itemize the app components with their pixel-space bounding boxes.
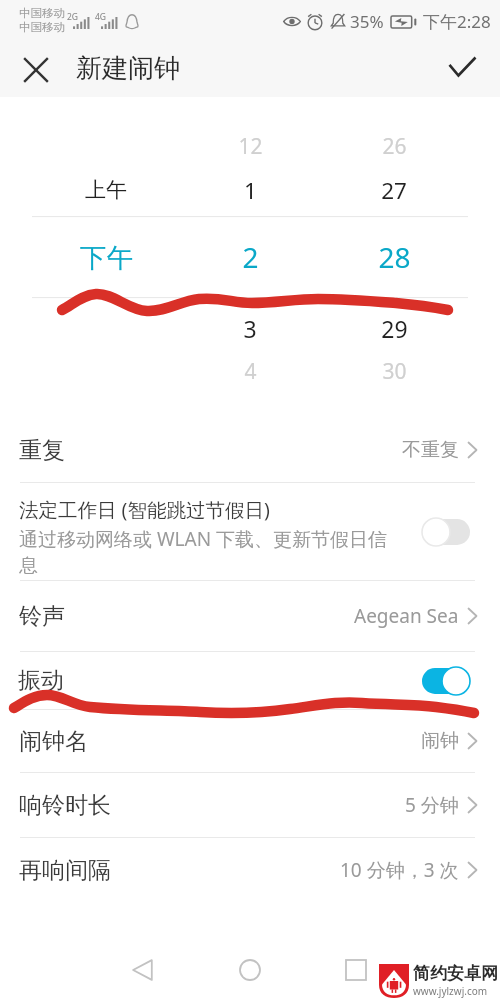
button[interactable]: 铃声 (0, 581, 500, 651)
button[interactable]: Close (14, 48, 58, 92)
staticText: 法定工作日 (智能跳过节假日) (19, 496, 270, 523)
staticText: 中国移动 (19, 20, 65, 34)
staticText: 10 分钟，3 次 (340, 857, 459, 883)
button[interactable]: 上午 (0, 97, 500, 418)
staticText: 下午2:28 (423, 10, 491, 33)
staticText: 铃声 (19, 602, 65, 631)
staticText: 3 (243, 313, 257, 344)
staticText: 新建闹钟 (76, 52, 180, 85)
staticText: 4 (244, 357, 257, 386)
staticText: 中国移动 (19, 6, 65, 20)
staticText: 通过移动网络或 WLAN 下载、更新节假日信息 (19, 526, 391, 577)
staticText: 重复 (19, 436, 65, 465)
button[interactable]: 响铃时长 (0, 773, 500, 837)
staticText: 1 (244, 175, 257, 206)
staticText: 闹钟 (421, 729, 459, 753)
staticText: 28 (378, 238, 411, 276)
staticText: 简约安卓网 (413, 963, 498, 984)
button[interactable]: 重复 (0, 418, 500, 482)
staticText: 27 (381, 175, 407, 206)
staticText: 2 (242, 238, 259, 276)
staticText: 振动 (18, 666, 64, 695)
button[interactable]: 闹钟名 (0, 710, 500, 772)
staticText: Aegean Sea (354, 603, 459, 629)
staticText: www.jylzwj.com (413, 984, 488, 998)
button[interactable]: 法定工作日 (智能跳过节假日) (0, 483, 500, 580)
staticText: 12 (238, 132, 263, 161)
staticText: 不重复 (402, 438, 459, 462)
staticText: 上午 (85, 177, 127, 203)
button[interactable]: Back (118, 945, 168, 995)
staticText: 29 (381, 313, 408, 344)
button[interactable]: Confirm (442, 48, 486, 92)
staticText: 闹钟名 (19, 727, 88, 756)
staticText: 26 (382, 132, 407, 161)
staticText: 响铃时长 (19, 791, 111, 820)
staticText: 5 分钟 (405, 792, 459, 818)
button[interactable]: 再响间隔 (0, 838, 500, 902)
staticText: 35% (350, 10, 384, 33)
staticText: 再响间隔 (19, 856, 111, 885)
staticText: 30 (382, 357, 407, 386)
button[interactable]: On (422, 667, 470, 695)
button[interactable]: 振动 (0, 652, 500, 709)
button[interactable]: Home (225, 945, 275, 995)
staticText: 4G (95, 11, 107, 23)
staticText: 2G (67, 11, 79, 23)
button[interactable]: Off (422, 518, 470, 546)
staticText: 下午 (80, 241, 133, 274)
button[interactable]: Recents (331, 945, 381, 995)
